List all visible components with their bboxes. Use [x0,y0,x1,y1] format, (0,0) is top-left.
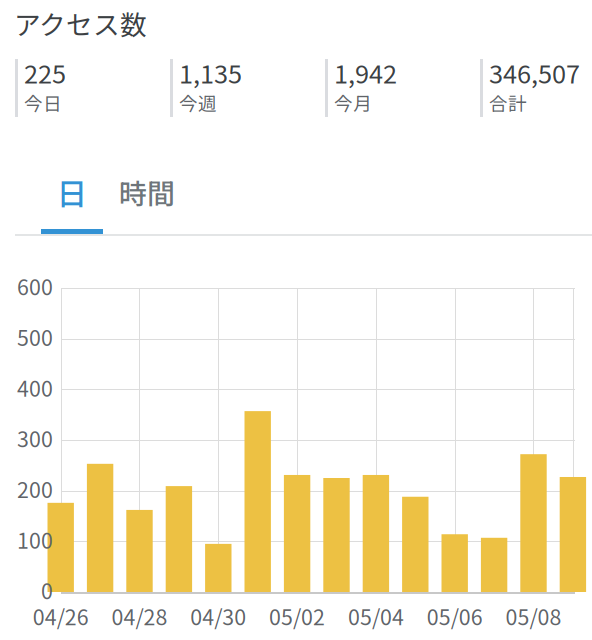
staticText: 0 [41,575,53,605]
staticText: 日 [56,170,87,214]
staticText: 今日 [24,89,62,116]
staticText: 300 [17,423,53,453]
staticText: 200 [17,473,53,504]
button[interactable]: 日 [41,163,103,221]
staticText: 500 [17,321,53,352]
staticText: 600 [17,271,53,301]
staticText: 04/28 [111,601,167,631]
staticText: 05/02 [269,601,325,631]
staticText: 04/26 [33,601,89,631]
staticText: 05/04 [348,601,404,631]
staticText: 100 [17,524,53,555]
staticText: 400 [17,372,53,403]
staticText: 合計 [489,89,527,116]
staticText: 時間 [119,172,175,212]
staticText: 1,135 [179,54,242,91]
staticText: 今月 [334,89,372,116]
staticText: 04/30 [190,601,246,631]
staticText: 今週 [179,89,217,116]
staticText: アクセス数 [14,4,147,43]
staticText: 225 [24,54,66,91]
staticText: 346,507 [489,54,580,91]
button[interactable]: 時間 [116,163,178,221]
staticText: 05/06 [427,601,483,631]
staticText: 1,942 [334,54,397,91]
staticText: 05/08 [505,601,561,631]
